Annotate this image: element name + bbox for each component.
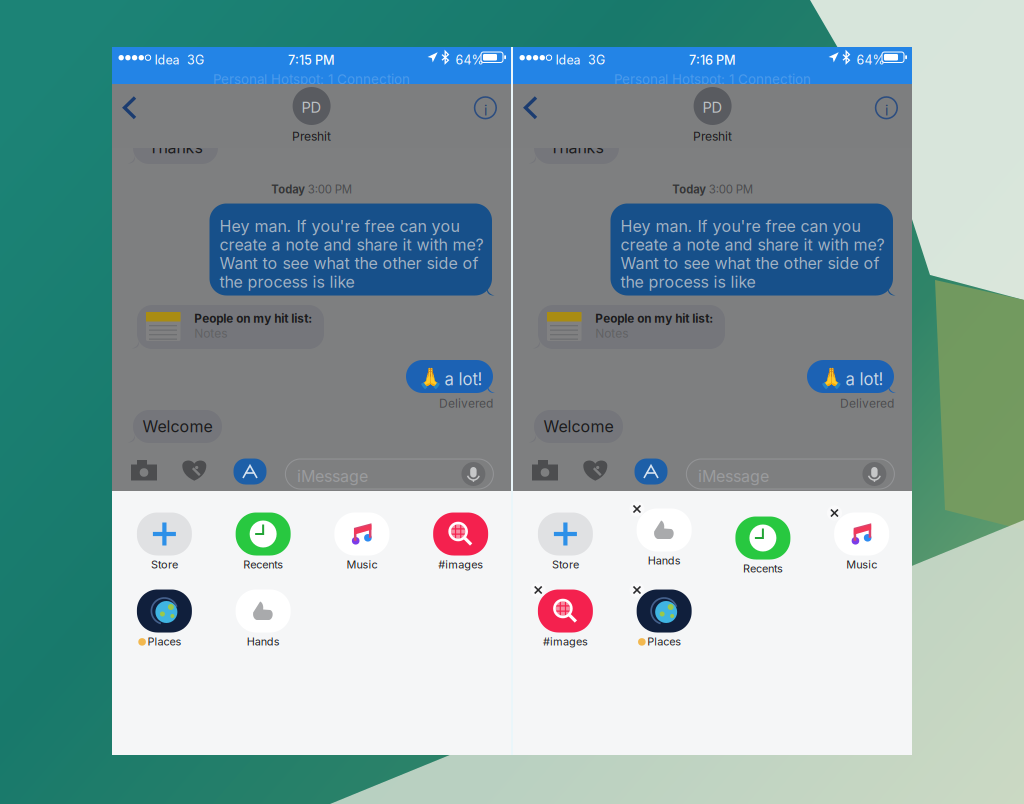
button[interactable]: Digital Touch	[173, 451, 217, 491]
staticText: #images	[543, 635, 588, 648]
button[interactable]: Camera	[523, 451, 569, 491]
staticText: Welcome	[142, 417, 212, 436]
staticText: Hey man. If you're free can you	[620, 216, 860, 236]
staticText: Want to see what the other side of	[620, 254, 879, 273]
staticText: Idea	[154, 52, 179, 67]
button[interactable]: Digital Touch	[574, 451, 618, 491]
staticText: 🙏	[819, 366, 844, 389]
button[interactable]: Places	[614, 589, 714, 653]
staticText: Hands	[648, 554, 681, 567]
staticText: 3G	[588, 52, 605, 67]
staticText: #images	[438, 558, 483, 571]
staticText: the process is like	[620, 272, 755, 292]
staticText: Store	[552, 558, 579, 571]
staticText: Welcome	[543, 417, 613, 436]
button[interactable]: Recents	[213, 512, 313, 576]
staticText: the process is like	[219, 272, 354, 292]
button[interactable]: Hands	[213, 589, 313, 653]
staticText: a lot!	[444, 369, 482, 389]
staticText: 🙏	[418, 366, 443, 389]
staticText: a lot!	[845, 369, 883, 389]
staticText: 3:00 PM	[308, 182, 352, 196]
staticText: Thanks	[549, 138, 603, 157]
button[interactable]: Hands	[614, 512, 714, 576]
staticText: i	[885, 102, 888, 119]
staticText: Store	[151, 558, 178, 571]
staticText: 64%	[856, 52, 884, 67]
button[interactable]: Music	[312, 512, 412, 576]
staticText: Preshit	[292, 129, 331, 144]
staticText: 3:00 PM	[709, 182, 753, 196]
staticText: Recents	[243, 558, 283, 571]
staticText: Hands	[247, 635, 280, 648]
staticText: PD	[302, 98, 322, 116]
staticText: Notes	[194, 326, 227, 340]
button[interactable]: Places	[114, 589, 214, 653]
staticText: Want to see what the other side of	[219, 254, 478, 273]
button[interactable]: Details	[465, 84, 507, 132]
button[interactable]: Back	[112, 84, 152, 132]
staticText: Idea	[555, 52, 580, 67]
staticText: 7:16 PM	[689, 52, 736, 68]
staticText: Personal Hotspot: 1 Connection	[614, 71, 811, 87]
staticText: People on my hit list:	[194, 311, 312, 326]
button[interactable]: Back	[513, 84, 553, 132]
button[interactable]: Store	[515, 512, 615, 576]
staticText: Music	[346, 558, 377, 571]
staticText: iMessage	[698, 466, 769, 486]
staticText: Today	[271, 183, 305, 196]
staticText: Hey man. If you're free can you	[219, 216, 459, 236]
staticText: i	[484, 102, 487, 119]
staticText: Recents	[743, 562, 783, 575]
button[interactable]: iMessage Apps	[626, 451, 675, 491]
staticText: People on my hit list:	[595, 311, 713, 326]
staticText: Delivered	[439, 396, 493, 411]
button[interactable]: Details	[866, 84, 908, 132]
button[interactable]: #images	[411, 512, 511, 576]
staticText: Thanks	[148, 138, 202, 157]
staticText: Delivered	[840, 396, 894, 411]
button[interactable]: Recents	[713, 512, 813, 576]
staticText: PD	[703, 98, 723, 116]
staticText: Places	[647, 635, 681, 648]
button[interactable]: Store	[114, 512, 214, 576]
staticText: create a note and share it with me?	[620, 235, 884, 254]
staticText: Today	[672, 183, 706, 196]
staticText: 64%	[455, 52, 483, 67]
staticText: Personal Hotspot: 1 Connection	[213, 71, 410, 87]
staticText: create a note and share it with me?	[219, 235, 483, 254]
button[interactable]: iMessage Apps	[225, 451, 274, 491]
staticText: Places	[147, 635, 181, 648]
staticText: Music	[846, 558, 877, 571]
staticText: iMessage	[297, 466, 368, 486]
staticText: 3G	[187, 52, 204, 67]
staticText: Preshit	[693, 129, 732, 144]
button[interactable]: Music	[812, 512, 912, 576]
staticText: Notes	[595, 326, 628, 340]
staticText: 7:15 PM	[288, 52, 335, 68]
button[interactable]: #images	[515, 589, 615, 653]
button[interactable]: Camera	[122, 451, 168, 491]
